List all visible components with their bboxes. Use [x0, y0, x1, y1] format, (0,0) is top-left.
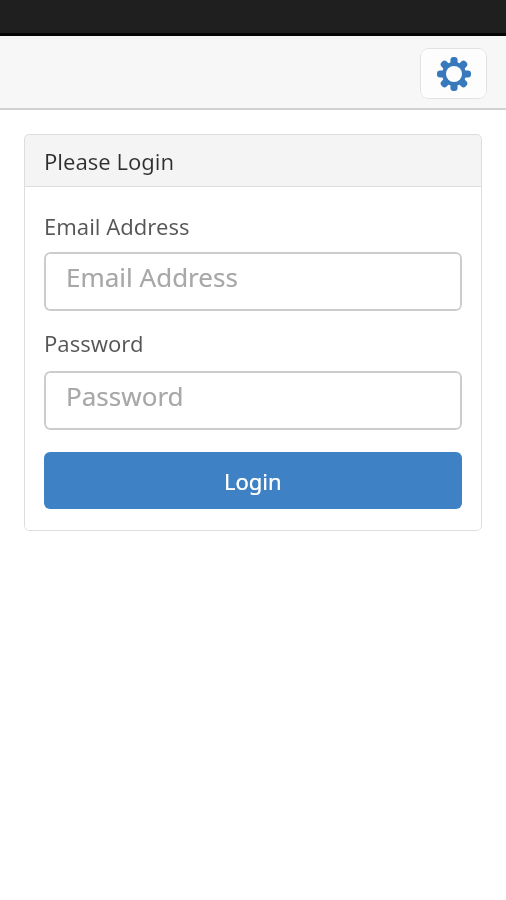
- staticText: Password: [66, 378, 184, 413]
- staticText: Please Login: [44, 146, 175, 176]
- button[interactable]: Login: [44, 452, 462, 509]
- staticText: Email Address: [44, 211, 190, 241]
- button[interactable]: [420, 48, 487, 99]
- button[interactable]: Password: [44, 371, 462, 430]
- staticText: Email Address: [66, 259, 238, 294]
- staticText: Password: [44, 328, 144, 358]
- button[interactable]: Email Address: [44, 252, 462, 311]
- staticText: Login: [224, 466, 282, 496]
